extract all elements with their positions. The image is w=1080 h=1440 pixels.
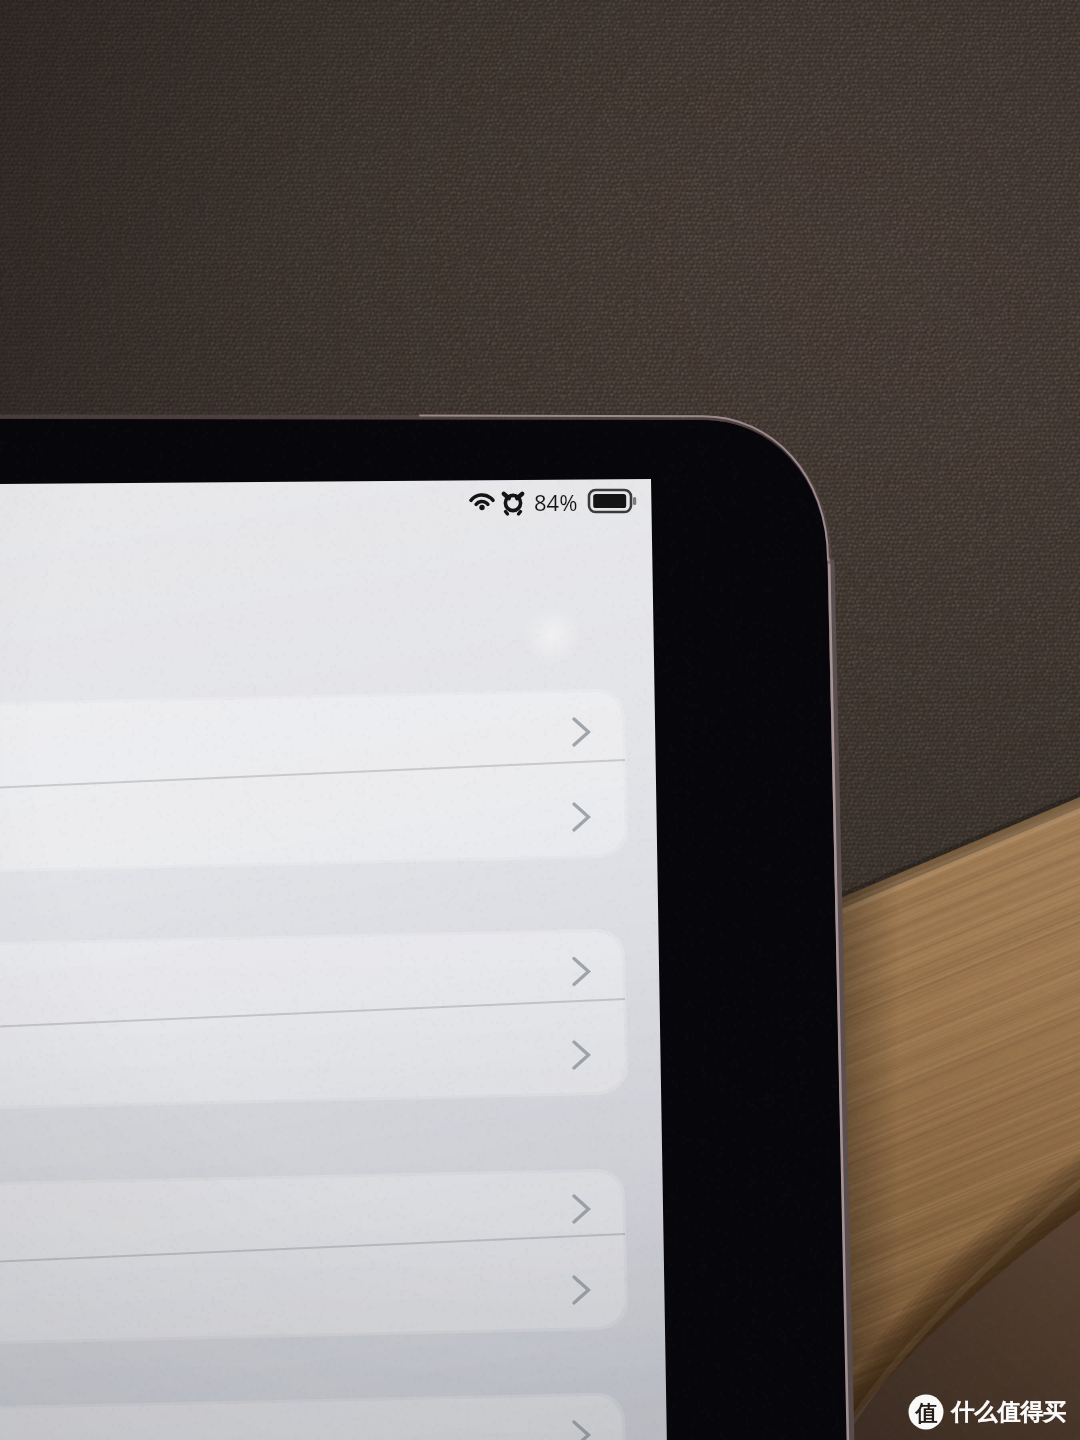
button[interactable]: Photo of a tablet showing a settings lis… (0, 0, 1080, 1440)
button[interactable]: Settings item 7 (0, 1394, 625, 1440)
button[interactable]: Settings item 2 (0, 778, 625, 860)
button[interactable]: Settings item 1 (0, 690, 625, 778)
button[interactable]: Settings item 4 (0, 1016, 625, 1096)
staticText: 84% (534, 487, 578, 517)
button[interactable]: Settings item 6 (0, 1250, 625, 1330)
button[interactable]: Settings item 3 (0, 930, 625, 1016)
staticText: 值 (915, 1400, 937, 1428)
staticText: 什么值得买 (951, 1398, 1066, 1427)
button[interactable]: Settings item 5 (0, 1170, 625, 1250)
